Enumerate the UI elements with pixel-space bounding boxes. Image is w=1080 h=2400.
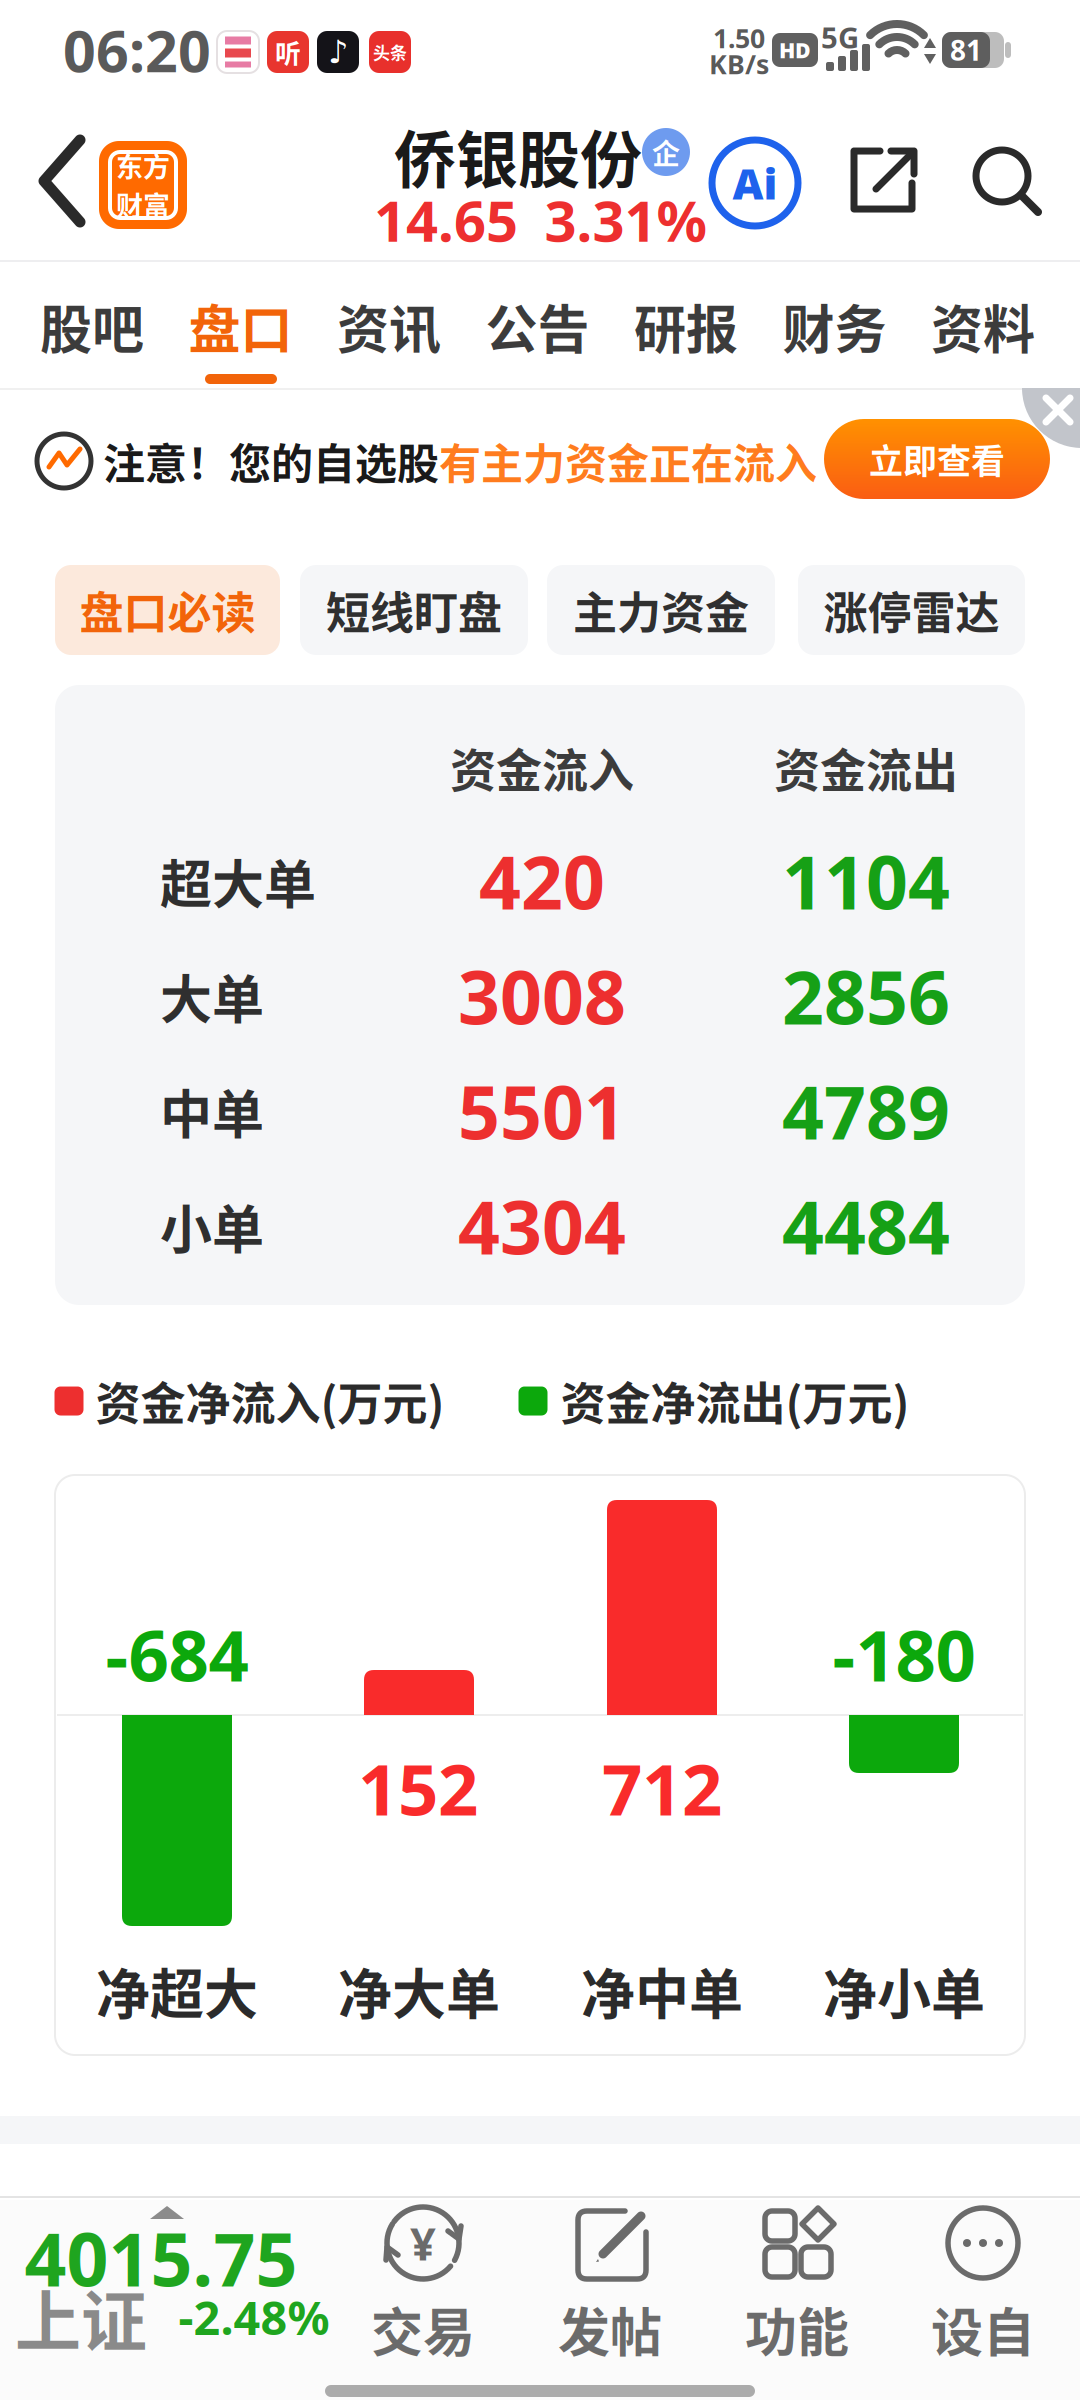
staticText: 超大单	[160, 843, 316, 919]
staticText: 3.31%	[544, 183, 707, 257]
button[interactable]: 盘口	[188, 288, 292, 364]
staticText: 3008	[458, 947, 626, 1045]
staticText: 听	[275, 33, 301, 71]
staticText: 净超大	[96, 1952, 258, 2030]
staticText: HD	[779, 36, 811, 64]
staticText: 5G	[821, 17, 859, 56]
staticText: 06:20	[63, 12, 211, 88]
button[interactable]: 发帖	[535, 2195, 685, 2365]
staticText: 涨停雷达	[823, 578, 999, 642]
staticText: 交易	[371, 2291, 475, 2367]
staticText: 股吧	[40, 288, 144, 364]
staticText: 420	[479, 832, 605, 930]
button[interactable]: Share	[846, 143, 922, 219]
staticText: -180	[832, 1607, 975, 1701]
staticText: 主力资金	[573, 578, 749, 642]
staticText: 头条	[373, 40, 407, 64]
staticText: 盘口必读	[79, 578, 255, 642]
staticText: 4304	[458, 1177, 626, 1275]
staticText: 大单	[160, 958, 264, 1034]
staticText: -2.48%	[178, 2286, 329, 2348]
button[interactable]: 4015.75	[0, 2206, 340, 2346]
staticText: KB/s	[709, 46, 769, 82]
button[interactable]: AI assistant	[712, 140, 798, 226]
button[interactable]: 设自	[908, 2195, 1058, 2365]
staticText: 资金流入	[450, 734, 634, 800]
staticText: 81	[950, 31, 982, 69]
button[interactable]: 资讯	[337, 288, 441, 364]
button[interactable]: 短线盯盘	[300, 565, 528, 655]
staticText: -684	[105, 1607, 248, 1701]
staticText: ¥	[410, 2213, 436, 2273]
staticText: 注意！您的自选股	[103, 431, 439, 491]
button[interactable]: 财务	[782, 288, 886, 364]
staticText: 1.50	[713, 20, 765, 56]
staticText: ♪	[328, 34, 348, 70]
button[interactable]: 立即查看	[824, 419, 1050, 499]
staticText: 设自	[931, 2291, 1035, 2367]
staticText: 1104	[782, 832, 950, 930]
staticText: 净小单	[823, 1952, 985, 2030]
staticText: 712	[602, 1741, 722, 1835]
staticText: 4015.75	[24, 2209, 297, 2307]
button[interactable]: 股吧	[40, 288, 144, 364]
staticText: 短线盯盘	[326, 578, 502, 642]
button[interactable]: 主力资金	[547, 565, 775, 655]
staticText: 资金净流出(万元)	[560, 1368, 909, 1434]
staticText: 2856	[782, 947, 950, 1045]
button[interactable]: 资料	[931, 288, 1035, 364]
staticText: 4789	[782, 1062, 950, 1160]
staticText: 中单	[160, 1073, 264, 1149]
staticText: 小单	[160, 1188, 264, 1264]
staticText: 财务	[782, 288, 886, 364]
staticText: 立即查看	[869, 434, 1005, 484]
staticText: 152	[358, 1741, 478, 1835]
staticText: 资料	[931, 288, 1035, 364]
staticText: 东方	[116, 146, 170, 185]
button[interactable]: Back	[0, 0, 1080, 2400]
staticText: 公告	[485, 288, 589, 364]
staticText: 盘口	[188, 288, 292, 364]
staticText: 有主力资金正在流入	[439, 431, 817, 491]
staticText: 4484	[782, 1177, 950, 1275]
staticText: 企	[652, 132, 680, 172]
staticText: 5501	[458, 1062, 626, 1160]
staticText: 发帖	[558, 2291, 662, 2367]
staticText: 资金净流入(万元)	[95, 1368, 444, 1434]
button[interactable]: 研报	[634, 288, 738, 364]
staticText: 上证	[15, 2269, 147, 2365]
staticText: 财富	[116, 185, 170, 224]
button[interactable]: ¥	[348, 2195, 498, 2365]
button[interactable]: 功能	[722, 2195, 872, 2365]
button[interactable]: Close	[0, 0, 1080, 2400]
staticText: 净大单	[338, 1952, 500, 2030]
staticText: 资金流出	[774, 734, 958, 800]
staticText: 研报	[634, 288, 738, 364]
button[interactable]: Search	[972, 146, 1042, 216]
button[interactable]: 东方	[99, 141, 187, 229]
staticText: 14.65	[374, 183, 518, 257]
button[interactable]: 盘口必读	[55, 565, 280, 655]
staticText: 侨银股份	[394, 111, 642, 201]
button[interactable]: 公告	[485, 288, 589, 364]
staticText: 净中单	[581, 1952, 743, 2030]
staticText: 功能	[745, 2291, 849, 2367]
staticText: 资讯	[337, 288, 441, 364]
button[interactable]: 涨停雷达	[798, 565, 1025, 655]
staticText: Ai	[732, 155, 777, 211]
